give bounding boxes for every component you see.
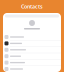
button[interactable] [3,60,61,66]
button[interactable] [3,34,61,40]
button[interactable] [3,47,61,53]
button[interactable] [3,53,61,59]
staticText: Contacts [21,3,43,10]
button[interactable] [3,66,61,72]
button[interactable] [3,40,61,46]
